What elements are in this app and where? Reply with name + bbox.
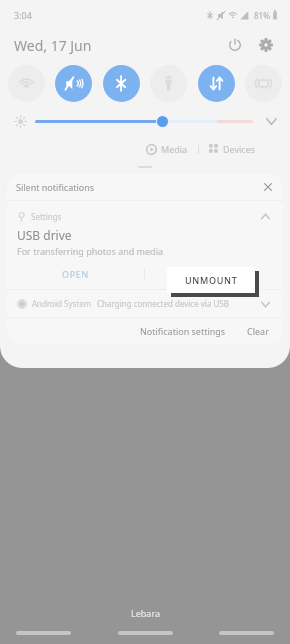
button[interactable]: Notification settings	[135, 321, 231, 341]
button[interactable]: Collapse	[257, 208, 273, 224]
button[interactable]: UNMOUNT	[167, 267, 255, 293]
staticText: Devices	[223, 143, 256, 155]
button[interactable]: Silent notifications	[7, 174, 283, 200]
button[interactable]: Devices	[205, 141, 260, 157]
button[interactable]: App	[16, 631, 71, 635]
staticText: Settings	[31, 211, 62, 222]
button[interactable]: Expand brightness	[261, 111, 281, 131]
staticText: UNMOUNT	[185, 274, 238, 286]
button[interactable]: Clear	[242, 321, 274, 341]
button[interactable]: App	[118, 631, 173, 635]
button[interactable]: Settings	[253, 32, 279, 58]
button[interactable]: Mobile data	[198, 65, 235, 102]
staticText: Notification settings	[140, 325, 226, 337]
button[interactable]: Power off	[222, 32, 248, 58]
staticText: OPEN	[62, 268, 89, 280]
button[interactable]: Sound mode	[55, 65, 92, 102]
staticText: Charging connected device via USB	[97, 298, 229, 309]
button[interactable]: Bluetooth	[103, 65, 140, 102]
staticText: USB drive	[17, 227, 72, 243]
staticText: Media	[161, 143, 188, 155]
staticText: Lebara	[131, 607, 160, 619]
staticText: Silent notifications	[16, 181, 95, 193]
button[interactable]: Android System	[7, 290, 283, 317]
button[interactable]: Auto rotate	[245, 65, 282, 102]
button[interactable]: Unmount action	[145, 262, 283, 285]
button[interactable]: Flashlight	[150, 65, 187, 102]
button[interactable]: App	[219, 631, 274, 635]
staticText: 3:04	[14, 9, 32, 21]
button[interactable]: OPEN	[7, 262, 144, 285]
button[interactable]: Expand	[257, 296, 273, 312]
button[interactable]: Brightness	[157, 116, 168, 127]
button[interactable]: Media	[142, 141, 192, 157]
button[interactable]: Wi-Fi	[8, 65, 45, 102]
staticText: Android System	[32, 298, 92, 309]
staticText: Clear	[247, 325, 269, 337]
staticText: 81%	[254, 10, 270, 21]
staticText: Wed, 17 Jun	[14, 36, 92, 55]
staticText: For transferring photos and media	[17, 245, 164, 257]
button[interactable]: Settings	[7, 201, 283, 289]
